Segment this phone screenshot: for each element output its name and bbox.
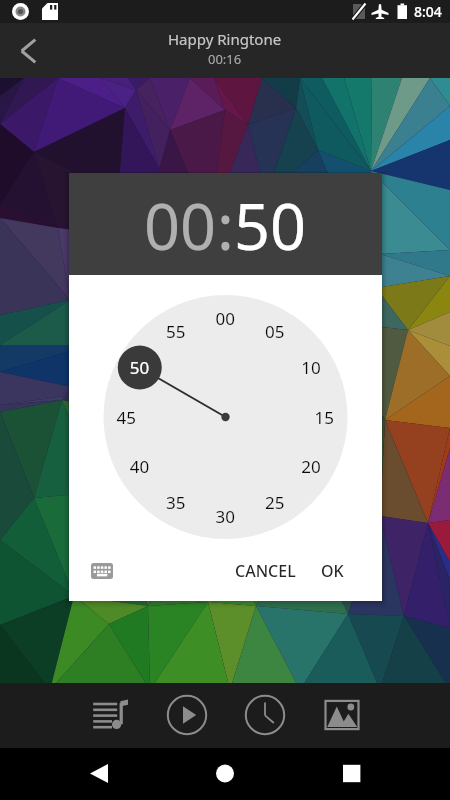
button[interactable]: Recents [327, 748, 377, 800]
button[interactable]: Gallery [315, 687, 369, 743]
button[interactable]: Playlist [83, 687, 137, 743]
staticText: : [217, 183, 234, 269]
staticText: CANCEL [235, 560, 296, 582]
button[interactable]: Back [74, 748, 124, 800]
staticText: 8:04 [414, 2, 442, 21]
button[interactable]: CANCEL [222, 548, 309, 594]
button[interactable]: Play [160, 687, 214, 743]
button[interactable]: Home [200, 748, 250, 800]
staticText: 00:16 [208, 50, 242, 68]
staticText: 00 [144, 183, 217, 269]
staticText: 50 [234, 183, 307, 269]
button[interactable]: OK [309, 548, 382, 594]
staticText: Happy Ringtone [168, 29, 282, 49]
button[interactable]: Timer [238, 687, 292, 743]
staticText: OK [321, 560, 344, 582]
button[interactable]: Keyboard input [84, 553, 120, 589]
button[interactable]: Back [2, 23, 54, 78]
